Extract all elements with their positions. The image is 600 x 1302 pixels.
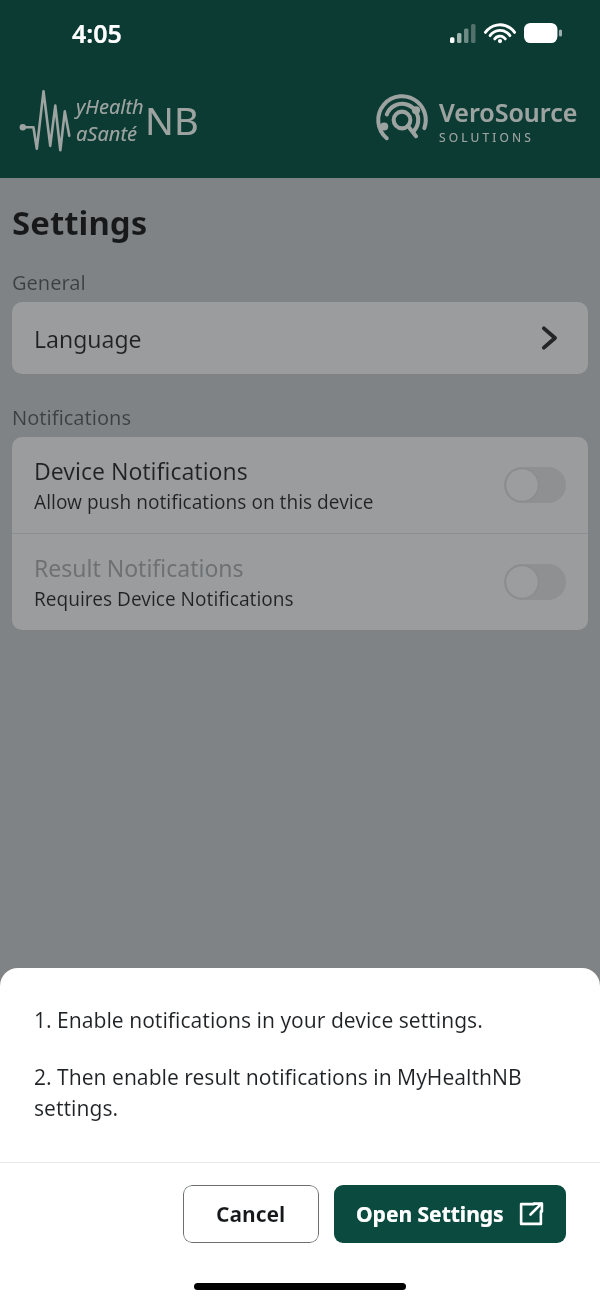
- button[interactable]: Device Notifications: [12, 437, 588, 533]
- staticText: 2. Then enable result notifications in M…: [34, 1063, 554, 1122]
- button[interactable]: Result Notifications: [12, 534, 588, 630]
- staticText: aSanté: [76, 120, 138, 147]
- staticText: Open Settings: [356, 1200, 504, 1229]
- staticText: NB: [145, 94, 199, 146]
- staticText: General: [12, 269, 86, 296]
- staticText: Allow push notifications on this device: [34, 489, 374, 515]
- staticText: 1. Enable notifications in your device s…: [34, 1006, 483, 1035]
- staticText: Cancel: [216, 1200, 286, 1229]
- staticText: VeroSource: [439, 95, 578, 129]
- staticText: Requires Device Notifications: [34, 586, 294, 612]
- staticText: Device Notifications: [34, 455, 248, 486]
- staticText: Language: [34, 323, 142, 354]
- staticText: S O L U T I O N S: [439, 129, 531, 145]
- button[interactable]: Language: [12, 302, 588, 374]
- button[interactable]: Open Settings: [334, 1185, 566, 1243]
- staticText: Notifications: [12, 404, 131, 431]
- button[interactable]: Cancel: [183, 1185, 319, 1243]
- staticText: Result Notifications: [34, 552, 244, 583]
- staticText: Settings: [12, 200, 148, 245]
- staticText: 4:05: [72, 16, 122, 50]
- staticText: yHealth: [76, 93, 144, 120]
